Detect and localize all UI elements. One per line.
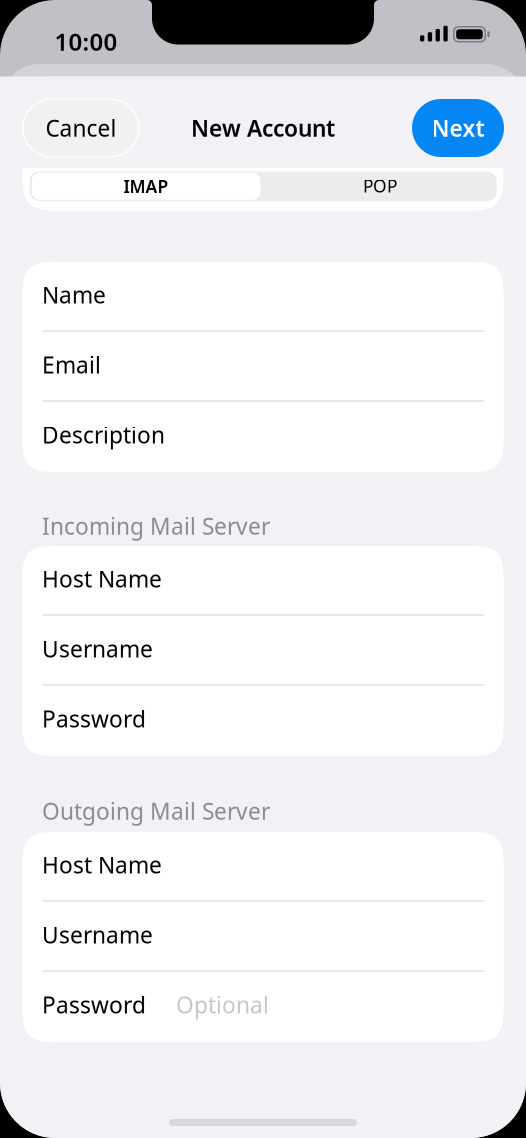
staticText: Description	[42, 420, 165, 450]
staticText: Email	[42, 350, 101, 380]
button[interactable]: Description	[22, 402, 503, 470]
staticText: Password	[42, 990, 146, 1020]
button[interactable]: Next	[412, 99, 504, 157]
button[interactable]: Username	[22, 616, 503, 684]
button[interactable]: POP	[266, 173, 494, 199]
staticText: POP	[363, 174, 397, 197]
staticText: IMAP	[124, 175, 169, 198]
button[interactable]: Host Name	[22, 546, 503, 614]
staticText: Next	[431, 113, 484, 143]
staticText: New Account	[191, 113, 335, 143]
staticText: Password	[42, 704, 146, 734]
button[interactable]: Host Name	[22, 832, 503, 900]
button[interactable]: IMAP	[32, 173, 260, 200]
staticText: Host Name	[42, 850, 162, 880]
button[interactable]: Password	[22, 972, 503, 1040]
staticText: Outgoing Mail Server	[42, 796, 270, 826]
staticText: Host Name	[42, 564, 162, 594]
staticText: Incoming Mail Server	[42, 511, 270, 541]
staticText: Optional	[176, 990, 269, 1020]
button[interactable]: Name	[22, 262, 503, 330]
staticText: Username	[42, 920, 153, 950]
staticText: Username	[42, 634, 153, 664]
button[interactable]: Password	[22, 686, 503, 754]
button[interactable]: Email	[22, 332, 503, 400]
button[interactable]: Username	[22, 902, 503, 970]
button[interactable]: Cancel	[23, 99, 139, 157]
staticText: Name	[42, 280, 106, 310]
staticText: Cancel	[45, 113, 116, 143]
staticText: 10:00	[54, 25, 117, 57]
